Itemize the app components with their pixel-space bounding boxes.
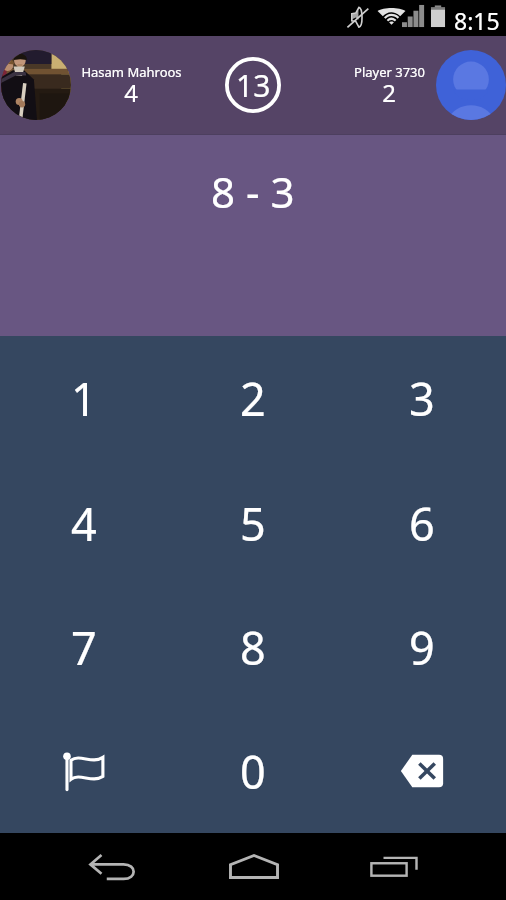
button[interactable]: 6: [337, 461, 506, 585]
staticText: 7: [71, 617, 97, 678]
staticText: 13: [236, 65, 271, 106]
button[interactable]: [1, 50, 71, 120]
button[interactable]: 8: [168, 585, 337, 709]
staticText: 3: [409, 368, 435, 429]
staticText: 2: [240, 368, 266, 429]
button[interactable]: Recent apps: [352, 833, 437, 900]
staticText: 8 - 3: [211, 163, 295, 220]
staticText: 9: [409, 617, 435, 678]
button[interactable]: 7: [0, 585, 168, 709]
staticText: 5: [240, 493, 266, 554]
staticText: Player 3730: [354, 63, 425, 81]
staticText: 8:15: [454, 5, 500, 36]
button[interactable]: 1: [0, 336, 168, 461]
staticText: 4: [124, 76, 138, 109]
staticText: 4: [71, 493, 97, 554]
button[interactable]: Backspace: [337, 709, 506, 833]
staticText: 0: [240, 741, 266, 802]
button[interactable]: Back: [70, 833, 155, 900]
button[interactable]: [436, 50, 506, 120]
button[interactable]: 5: [168, 461, 337, 585]
staticText: Hasam Mahroos: [81, 63, 182, 81]
button[interactable]: 9: [337, 585, 506, 709]
button[interactable]: 2: [168, 336, 337, 461]
staticText: 1: [71, 368, 97, 429]
button[interactable]: 4: [0, 461, 168, 585]
button[interactable]: 3: [337, 336, 506, 461]
staticText: 2: [382, 76, 396, 109]
button[interactable]: Surrender: [0, 709, 168, 833]
staticText: 6: [409, 493, 435, 554]
button[interactable]: 0: [168, 709, 337, 833]
staticText: 8: [240, 617, 266, 678]
button[interactable]: Home: [211, 833, 296, 900]
